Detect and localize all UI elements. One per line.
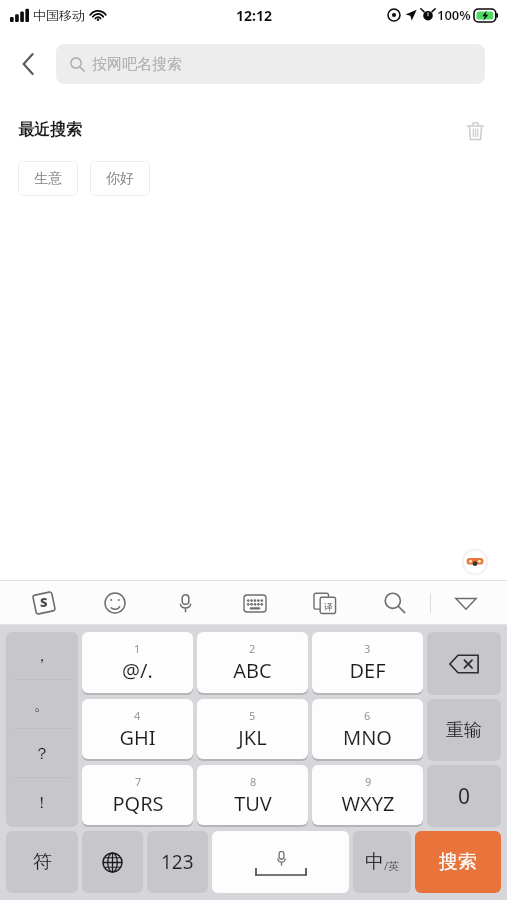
- staticText: 5: [249, 708, 256, 723]
- button[interactable]: Backspace: [427, 632, 501, 695]
- staticText: ，: [34, 646, 50, 666]
- button[interactable]: 。: [6, 680, 78, 729]
- staticText: 100%: [437, 6, 471, 24]
- button[interactable]: Translate: [290, 581, 360, 625]
- button[interactable]: 你好: [90, 161, 150, 196]
- staticText: /英: [384, 858, 400, 873]
- staticText: PQRS: [112, 790, 164, 817]
- button[interactable]: 123: [147, 831, 208, 893]
- staticText: 最近搜索: [18, 120, 82, 140]
- staticText: JKL: [238, 724, 267, 751]
- staticText: 搜索: [439, 850, 477, 874]
- staticText: 重输: [446, 719, 482, 742]
- button[interactable]: 8: [197, 765, 308, 825]
- staticText: WXYZ: [341, 790, 395, 817]
- button[interactable]: Keyboard layout: [220, 581, 290, 625]
- staticText: ？: [34, 744, 50, 764]
- button[interactable]: 搜索: [415, 831, 501, 893]
- staticText: 12:12: [236, 6, 272, 25]
- staticText: 3: [364, 641, 371, 656]
- staticText: 。: [34, 695, 50, 715]
- button[interactable]: 生意: [18, 161, 78, 196]
- staticText: MNO: [343, 724, 392, 751]
- staticText: 2: [249, 641, 256, 656]
- button[interactable]: Sogou input: [8, 581, 79, 625]
- button[interactable]: Emoji: [79, 581, 150, 625]
- button[interactable]: 中英切换: [353, 831, 411, 893]
- staticText: @/.: [122, 657, 153, 684]
- button[interactable]: 0: [427, 765, 501, 827]
- button[interactable]: 3: [312, 632, 423, 693]
- staticText: GHI: [119, 724, 156, 751]
- staticText: 按网吧名搜索: [92, 55, 182, 74]
- staticText: 1: [134, 641, 141, 656]
- button[interactable]: 4: [82, 699, 193, 759]
- staticText: 你好: [106, 170, 134, 188]
- button[interactable]: Voice input: [150, 581, 220, 625]
- staticText: DEF: [349, 657, 386, 684]
- button[interactable]: 5: [197, 699, 308, 759]
- button[interactable]: 重输: [427, 699, 501, 761]
- staticText: 0: [458, 782, 471, 811]
- button[interactable]: 9: [312, 765, 423, 825]
- button[interactable]: ，: [6, 632, 78, 680]
- staticText: 8: [250, 774, 257, 789]
- staticText: 4: [134, 708, 141, 723]
- staticText: ABC: [233, 657, 272, 684]
- button[interactable]: Space: [212, 831, 349, 893]
- button[interactable]: 2: [197, 632, 308, 693]
- button[interactable]: Sogou assistant: [461, 548, 489, 576]
- staticText: 符: [33, 850, 52, 874]
- button[interactable]: ？: [6, 729, 78, 778]
- staticText: TUV: [234, 790, 272, 817]
- button[interactable]: ！: [6, 778, 78, 827]
- staticText: 7: [135, 774, 142, 789]
- button[interactable]: 符号: [6, 831, 78, 893]
- button[interactable]: 7: [82, 765, 193, 825]
- button[interactable]: Language: [82, 831, 143, 893]
- button[interactable]: 按网吧名搜索: [56, 44, 485, 84]
- button[interactable]: 1: [82, 632, 193, 693]
- staticText: 123: [161, 849, 194, 875]
- staticText: ！: [34, 793, 50, 813]
- staticText: S: [40, 593, 48, 611]
- staticText: 译: [324, 601, 333, 612]
- staticText: 中国移动: [33, 7, 85, 23]
- staticText: 生意: [34, 170, 62, 188]
- staticText: 9: [365, 774, 372, 789]
- button[interactable]: 6: [312, 699, 423, 759]
- button[interactable]: Search: [360, 581, 430, 625]
- staticText: 中: [365, 850, 384, 874]
- button[interactable]: Hide keyboard: [431, 581, 501, 625]
- button[interactable]: Back: [0, 36, 56, 92]
- staticText: 6: [364, 708, 371, 723]
- button[interactable]: Clear history: [457, 112, 493, 148]
